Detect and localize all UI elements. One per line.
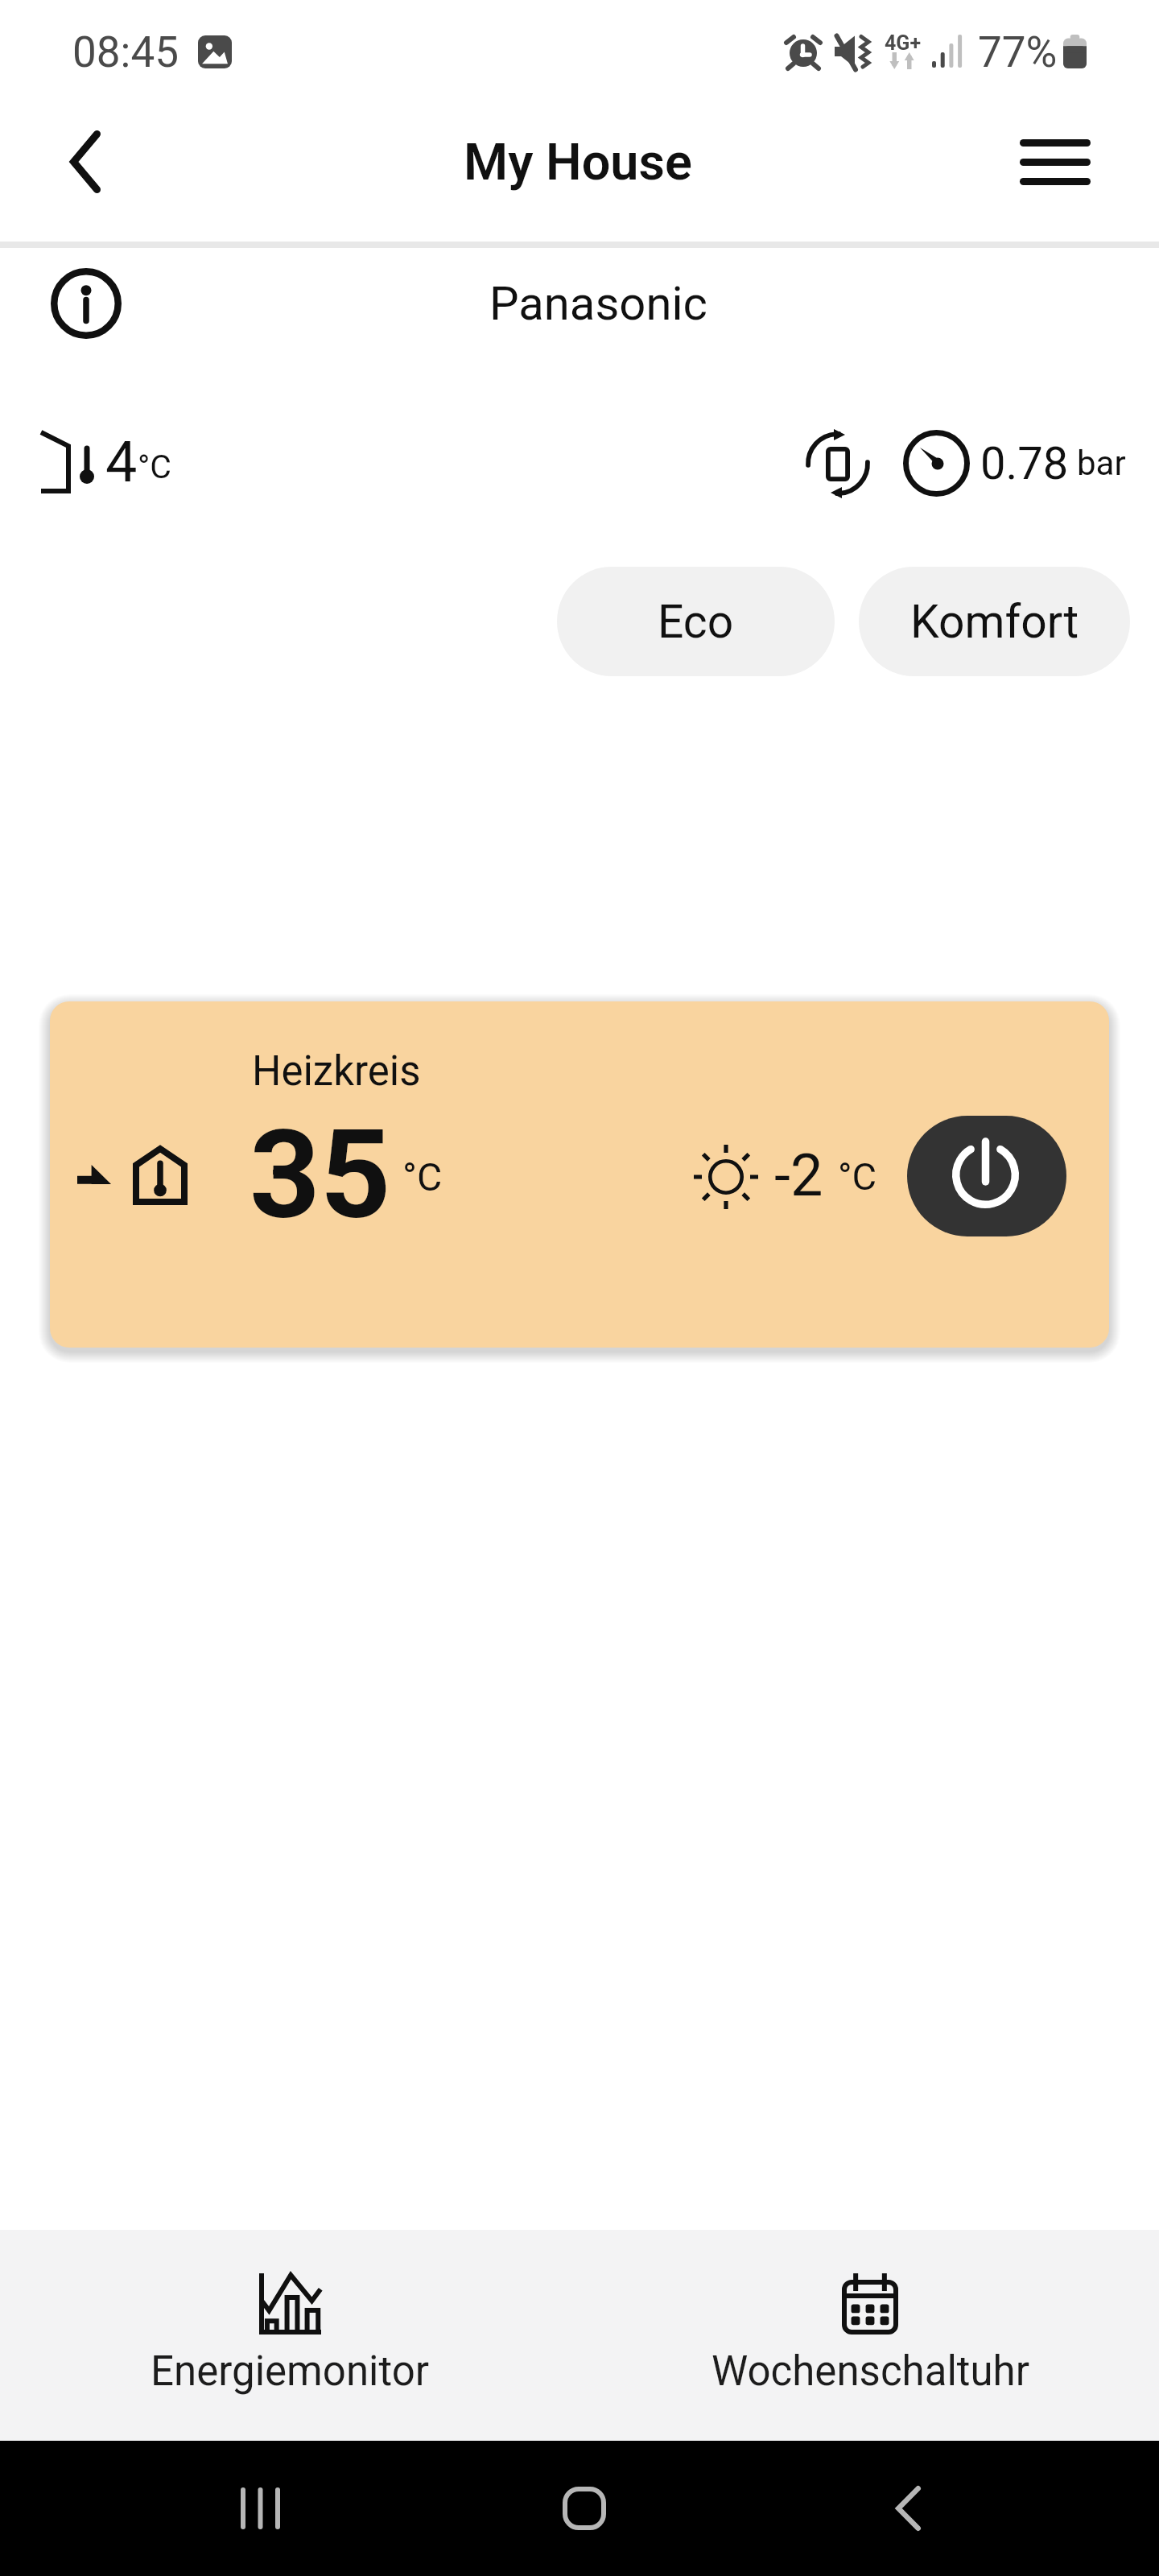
button[interactable]: Heizkreis: [50, 1001, 1109, 1348]
button[interactable]: Energiemonitor: [97, 2246, 484, 2407]
staticText: 77%: [978, 27, 1058, 77]
staticText: My House: [464, 133, 692, 192]
staticText: Energiemonitor: [151, 2347, 430, 2396]
staticText: 0.78: [980, 437, 1069, 490]
button[interactable]: Eco: [557, 567, 835, 676]
staticText: Panasonic: [489, 276, 707, 331]
staticText: 4: [105, 429, 138, 495]
staticText: °C: [838, 1154, 877, 1199]
staticText: 08:45: [72, 27, 179, 77]
staticText: Eco: [658, 595, 734, 649]
button[interactable]: Komfort: [859, 567, 1130, 676]
staticText: 4G+: [885, 31, 922, 55]
staticText: bar: [1077, 444, 1126, 483]
button[interactable]: Menu: [1007, 114, 1103, 210]
staticText: Komfort: [910, 595, 1079, 649]
staticText: -2: [774, 1141, 823, 1209]
button[interactable]: Wochenschaltuhr: [658, 2246, 1045, 2407]
staticText: °C: [402, 1154, 443, 1199]
button[interactable]: Info: [41, 258, 131, 349]
staticText: 35: [250, 1103, 391, 1247]
button[interactable]: Back: [45, 122, 126, 202]
button[interactable]: Power: [907, 1116, 1066, 1236]
staticText: Heizkreis: [252, 1047, 421, 1096]
staticText: °C: [138, 448, 172, 486]
staticText: Wochenschaltuhr: [711, 2347, 1029, 2396]
